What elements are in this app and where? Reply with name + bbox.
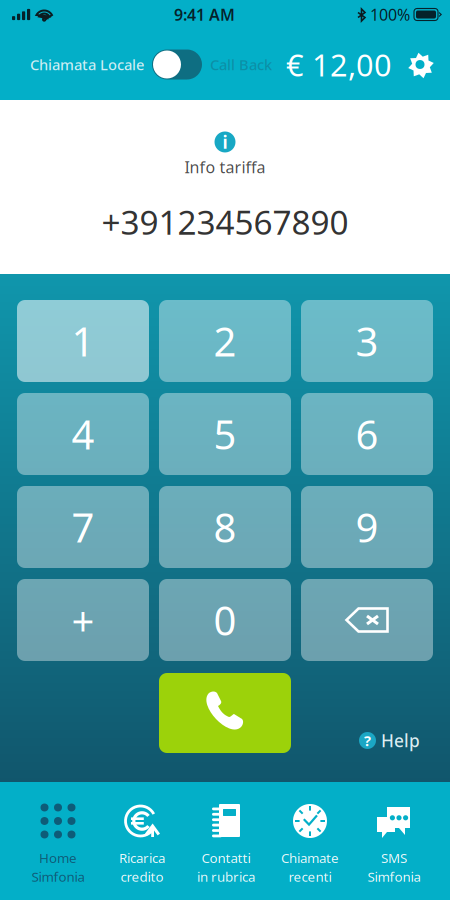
staticText: Simfonia — [367, 868, 420, 885]
button[interactable]: 6 — [301, 393, 433, 475]
staticText: 0 — [213, 593, 236, 646]
button[interactable]: Delete — [301, 579, 433, 661]
staticText: 1 — [71, 314, 94, 367]
staticText: Chiamate — [281, 849, 339, 867]
button[interactable]: 2 — [159, 300, 291, 382]
staticText: Chiamata Locale — [30, 55, 144, 74]
staticText: 4 — [71, 407, 94, 460]
staticText: ? — [364, 731, 371, 750]
button[interactable]: 5 — [159, 393, 291, 475]
staticText: 2 — [213, 314, 236, 367]
staticText: 3 — [355, 314, 378, 367]
staticText: SMS — [381, 849, 407, 867]
staticText: +391234567890 — [101, 200, 348, 244]
staticText: 6 — [355, 407, 378, 460]
button[interactable]: 8 — [159, 486, 291, 568]
button[interactable]: i — [184, 130, 265, 178]
staticText: 9:41 AM — [174, 4, 235, 25]
button[interactable]: Contatti — [184, 782, 268, 900]
staticText: 7 — [71, 500, 94, 553]
button[interactable]: 9 — [301, 486, 433, 568]
staticText: 9 — [355, 500, 378, 553]
staticText: Info tariffa — [184, 156, 265, 178]
button[interactable]: 0 — [159, 579, 291, 661]
staticText: recenti — [288, 868, 331, 885]
staticText: credito — [120, 868, 163, 885]
staticText: Simfonia — [31, 868, 84, 885]
staticText: Contatti — [201, 849, 250, 867]
staticText: Ricarica — [119, 849, 165, 867]
button[interactable]: Call — [159, 673, 291, 753]
staticText: i — [222, 130, 227, 153]
staticText: 100% — [370, 4, 410, 25]
button[interactable]: Chiamate — [268, 782, 352, 900]
staticText: € 12,00 — [286, 44, 392, 85]
staticText: Home — [39, 849, 77, 867]
button[interactable]: Ricarica — [100, 782, 184, 900]
button[interactable]: 7 — [17, 486, 149, 568]
button[interactable]: 3 — [301, 300, 433, 382]
button[interactable]: Settings — [392, 44, 432, 84]
button[interactable]: Chiamata Locale / Call Back toggle — [0, 39, 272, 89]
button[interactable]: Home — [16, 782, 100, 900]
staticText: in rubrica — [197, 868, 255, 885]
button[interactable]: 1 — [17, 300, 149, 382]
staticText: Call Back — [210, 55, 272, 74]
staticText: + — [71, 593, 94, 646]
staticText: 5 — [213, 407, 236, 460]
staticText: 8 — [213, 500, 236, 553]
button[interactable]: + — [17, 579, 149, 661]
button[interactable]: ? — [359, 729, 433, 753]
button[interactable]: SMS — [352, 782, 436, 900]
button[interactable]: 4 — [17, 393, 149, 475]
staticText: Help — [381, 729, 420, 752]
